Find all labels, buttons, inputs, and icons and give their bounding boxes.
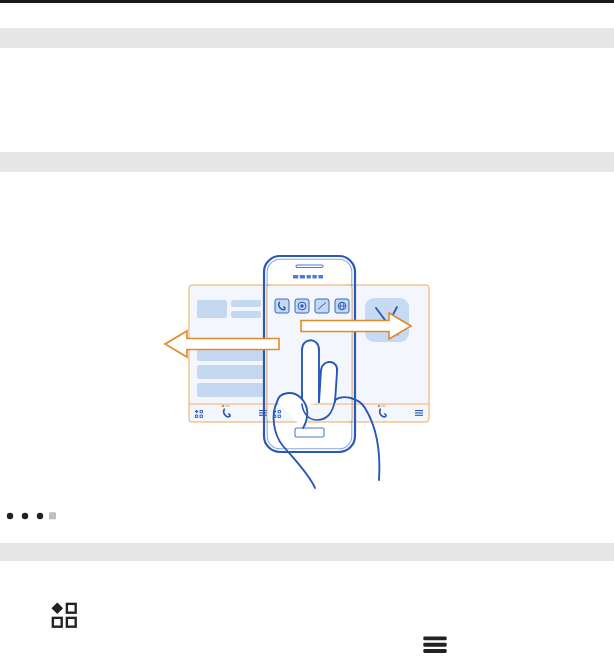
button[interactable]: Menu xyxy=(420,633,450,655)
button[interactable]: Page indicator xyxy=(4,508,58,524)
button[interactable]: Apps menu xyxy=(50,601,78,629)
